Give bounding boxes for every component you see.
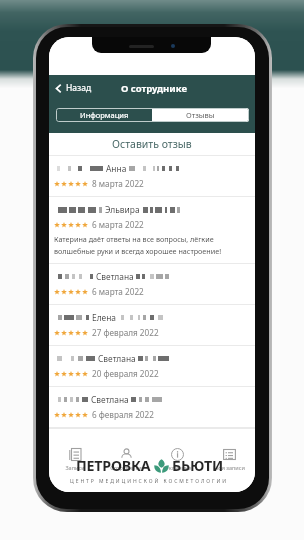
button[interactable]: Записи [49,429,100,492]
staticText: Записи [65,464,85,471]
button[interactable]: Оставить отзыв [49,133,255,155]
staticText: 6 февраля 2022 [92,409,154,420]
staticText: Катерина даёт ответы на все вопросы, лёг… [54,234,250,256]
staticText: Светлана [91,394,129,405]
button[interactable]: Анна [49,156,255,196]
staticText: Мои записи [213,464,245,471]
button[interactable]: Светлана [49,387,255,427]
button[interactable]: Елена [49,305,255,345]
button[interactable]: Сотрудники [100,429,151,492]
staticText: Эльвира [105,204,140,215]
staticText: 6 марта 2022 [92,219,144,230]
button[interactable]: Светлана [49,264,255,304]
staticText: 8 марта 2022 [92,178,144,189]
staticText: 6 марта 2022 [92,286,144,297]
staticText: Сотрудники [110,464,142,471]
staticText: Анна [106,163,127,174]
button[interactable]: Отзывы [152,108,249,122]
staticText: БЬЮТИ [172,456,223,475]
staticText: О сотруднике [121,82,187,95]
staticText: Назад [66,82,92,94]
button[interactable]: Мои записи [203,429,255,492]
staticText: Светлана [98,353,136,364]
staticText: ПЕТРОВКА [76,456,151,475]
button[interactable]: О клинике [151,429,203,492]
staticText: 20 февраля 2022 [92,368,159,379]
staticText: О клинике [163,464,191,471]
staticText: 27 февраля 2022 [92,327,159,338]
button[interactable]: Информация [56,108,152,122]
staticText: Отзывы [186,110,215,120]
button[interactable]: Светлана [49,346,255,386]
button[interactable]: Эльвира [49,197,255,263]
staticText: Оставить отзыв [112,137,192,151]
button[interactable]: Назад [54,75,92,101]
staticText: Елена [92,312,117,323]
staticText: ЦЕНТР МЕДИЦИНСКОЙ КОСМЕТОЛОГИИ [70,478,229,485]
staticText: Светлана [96,271,134,282]
staticText: Информация [80,110,129,120]
